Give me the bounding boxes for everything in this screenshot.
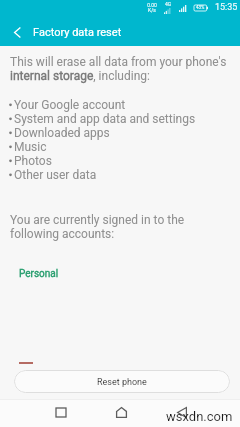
staticText: Other user data — [14, 168, 97, 182]
staticText: Factory data reset — [33, 26, 122, 39]
staticText: 4G — [165, 1, 172, 7]
button[interactable]: Reset phone — [14, 370, 230, 393]
staticText: 15:35 — [215, 2, 238, 13]
staticText: 0.00 K/s — [147, 2, 157, 13]
staticText: This will erase all data from your phone… — [10, 55, 227, 83]
staticText: Music — [14, 140, 47, 154]
staticText: You are currently signed in to the follo… — [10, 213, 185, 241]
button[interactable]: Back — [3, 18, 31, 46]
button[interactable]: Recent apps — [47, 398, 75, 426]
staticText: Photos — [14, 154, 52, 168]
staticText: System and app data and settings — [14, 112, 196, 126]
staticText: 43% — [196, 5, 205, 10]
staticText: Personal — [19, 268, 59, 280]
staticText: Reset phone — [97, 377, 147, 388]
button[interactable]: Back — [168, 398, 196, 426]
staticText: wsxdn.com — [166, 409, 233, 424]
staticText: Downloaded apps — [14, 126, 110, 140]
button[interactable]: Home — [107, 398, 135, 426]
staticText: Your Google account — [14, 98, 126, 112]
